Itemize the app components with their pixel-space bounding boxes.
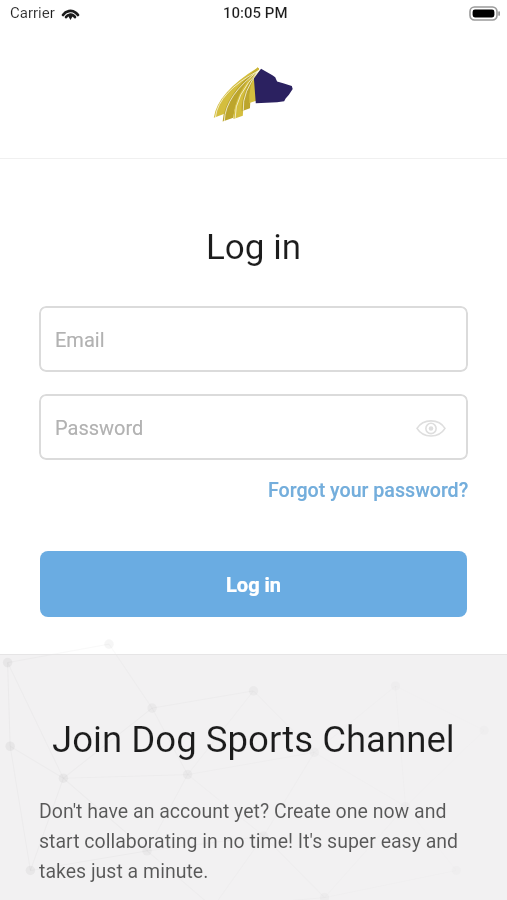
button[interactable]: Email: [39, 306, 468, 372]
button[interactable]: Password: [39, 394, 468, 460]
staticText: Password: [55, 416, 144, 439]
button[interactable]: Log in: [40, 551, 467, 617]
staticText: Log in: [226, 573, 282, 596]
staticText: Join Dog Sports Channel: [52, 718, 455, 761]
staticText: 10:05 PM: [223, 4, 288, 22]
other: Show password: [417, 418, 445, 437]
button[interactable]: Forgot your password?: [268, 477, 469, 504]
staticText: Email: [55, 328, 105, 351]
staticText: Don't have an account yet? Create one no…: [39, 800, 469, 883]
staticText: Log in: [0, 227, 507, 268]
staticText: Carrier: [10, 4, 55, 22]
